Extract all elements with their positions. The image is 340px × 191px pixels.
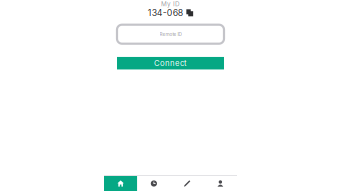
- button[interactable]: Account: [204, 176, 237, 191]
- button[interactable]: Notes: [170, 176, 204, 191]
- staticText: Connect: [154, 58, 187, 68]
- staticText: My ID: [161, 0, 180, 8]
- button[interactable]: Recent sessions: [137, 176, 170, 191]
- staticText: 134-068: [148, 7, 183, 18]
- button[interactable]: Remote ID: [117, 25, 224, 44]
- button[interactable]: Home: [104, 176, 137, 191]
- button[interactable]: Copy my ID: [144, 7, 196, 18]
- staticText: Remote ID: [159, 31, 181, 37]
- button[interactable]: Connect: [117, 57, 224, 69]
